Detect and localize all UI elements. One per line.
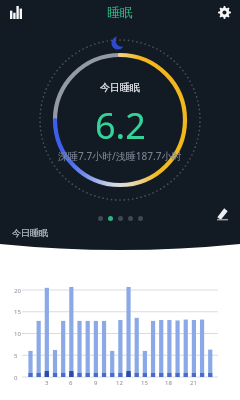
staticText: 12 <box>116 379 123 387</box>
staticText: 21 <box>190 379 197 387</box>
staticText: 15 <box>141 379 148 387</box>
button[interactable]: Edit <box>212 203 232 223</box>
staticText: 15 <box>14 308 21 316</box>
staticText: 0 <box>14 374 18 382</box>
staticText: 18 <box>165 379 172 387</box>
button[interactable]: Settings <box>214 2 234 22</box>
staticText: 5 <box>14 352 18 360</box>
staticText: 9 <box>94 379 98 387</box>
staticText: 深睡7.7小时/浅睡187.7小时 <box>58 149 182 163</box>
button[interactable]: Page indicator <box>98 216 143 221</box>
button[interactable]: Statistics <box>6 2 26 22</box>
staticText: 今日睡眠 <box>100 81 140 94</box>
staticText: 睡眠 <box>107 4 133 20</box>
staticText: 10 <box>14 330 21 338</box>
staticText: 6 <box>69 379 73 387</box>
staticText: 20 <box>14 287 21 295</box>
staticText: 6.2 <box>95 101 146 150</box>
staticText: 3 <box>45 379 49 387</box>
staticText: 今日睡眠 <box>12 227 48 238</box>
